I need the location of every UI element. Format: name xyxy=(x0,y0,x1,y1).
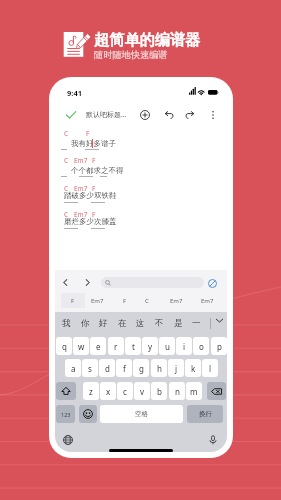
staticText: C xyxy=(64,129,69,138)
button[interactable]: x xyxy=(100,382,116,400)
staticText: 磨烂多少次膝盖 xyxy=(64,217,117,226)
button[interactable]: Redo xyxy=(180,105,200,125)
staticText: 123 xyxy=(61,411,71,418)
button[interactable]: c xyxy=(117,382,133,400)
button[interactable]: C xyxy=(135,293,159,308)
button[interactable]: u xyxy=(159,337,175,355)
staticText: c xyxy=(123,386,127,397)
button[interactable]: p xyxy=(211,337,227,355)
staticText: t xyxy=(132,341,135,352)
button[interactable]: 这 xyxy=(131,313,149,334)
staticText: m xyxy=(190,386,198,397)
button[interactable]: Next chord xyxy=(78,273,96,291)
staticText: Em7 xyxy=(170,297,183,305)
staticText: C xyxy=(64,156,69,165)
button[interactable]: Backspace xyxy=(207,382,226,400)
button[interactable]: h xyxy=(151,359,167,377)
staticText: Em7 xyxy=(74,184,88,193)
button[interactable]: Clear chord xyxy=(203,274,221,292)
staticText: 空格 xyxy=(135,410,148,418)
staticText: a xyxy=(71,363,76,374)
staticText: Em7 xyxy=(74,156,88,165)
button[interactable]: 我 xyxy=(57,313,75,334)
button[interactable]: Emoji xyxy=(79,405,97,423)
button[interactable]: F xyxy=(61,293,85,308)
button[interactable]: Previous chord xyxy=(56,273,74,291)
button[interactable]: 你 xyxy=(76,313,94,334)
button[interactable]: g xyxy=(133,359,149,377)
button[interactable]: 换行 xyxy=(187,405,223,423)
staticText: C xyxy=(145,297,149,305)
button[interactable]: q xyxy=(56,337,72,355)
staticText: 好 xyxy=(99,318,108,329)
staticText: q xyxy=(62,341,67,352)
staticText: e xyxy=(96,341,101,352)
staticText: 一 xyxy=(192,318,201,329)
staticText: o xyxy=(199,341,204,352)
button[interactable]: 一 xyxy=(187,313,205,334)
staticText: z xyxy=(89,386,93,397)
button[interactable]: l xyxy=(202,359,218,377)
button[interactable]: Undo xyxy=(159,105,179,125)
staticText: F xyxy=(71,297,75,305)
staticText: 我有好多谱子 xyxy=(71,139,116,148)
staticText: F xyxy=(92,210,96,219)
button[interactable] xyxy=(101,277,204,288)
button[interactable]: More candidates xyxy=(212,313,226,327)
staticText: v xyxy=(140,386,145,397)
staticText: 个个都求之不得 xyxy=(71,166,124,175)
staticText: 这 xyxy=(136,318,145,329)
button[interactable]: 是 xyxy=(169,313,187,334)
button[interactable]: o xyxy=(193,337,209,355)
staticText: 我 xyxy=(62,318,71,329)
button[interactable]: y xyxy=(142,337,158,355)
staticText: 你 xyxy=(81,318,90,329)
button[interactable]: Em7 xyxy=(195,293,219,308)
button[interactable]: Save xyxy=(61,105,81,125)
button[interactable]: e xyxy=(90,337,106,355)
button[interactable]: More options xyxy=(203,105,223,125)
button[interactable]: s xyxy=(82,359,98,377)
button[interactable]: w xyxy=(73,337,89,355)
staticText: j xyxy=(175,363,178,374)
button[interactable]: 空格 xyxy=(100,405,183,423)
staticText: s xyxy=(88,363,92,374)
button[interactable]: v xyxy=(134,382,150,400)
staticText: 在 xyxy=(118,318,127,329)
staticText: f xyxy=(123,363,126,374)
button[interactable]: 在 xyxy=(113,313,131,334)
button[interactable]: z xyxy=(83,382,99,400)
button[interactable]: 不 xyxy=(150,313,168,334)
button[interactable]: j xyxy=(168,359,184,377)
staticText: p xyxy=(217,341,222,352)
staticText: 踏破多少双铁鞋 xyxy=(64,191,117,200)
staticText: h xyxy=(157,363,162,374)
button[interactable]: Em7 xyxy=(164,293,188,308)
staticText: 9:41 xyxy=(67,88,82,98)
button[interactable]: m xyxy=(186,382,202,400)
button[interactable]: t xyxy=(125,337,141,355)
button[interactable]: i xyxy=(176,337,192,355)
button[interactable]: n xyxy=(169,382,185,400)
staticText: r xyxy=(114,341,118,352)
button[interactable]: 123 xyxy=(56,405,75,423)
button[interactable]: d xyxy=(99,359,115,377)
button[interactable]: a xyxy=(65,359,81,377)
button[interactable]: Switch language xyxy=(59,431,77,449)
button[interactable]: k xyxy=(185,359,201,377)
staticText: k xyxy=(191,363,196,374)
button[interactable]: 好 xyxy=(94,313,112,334)
button[interactable]: Add section xyxy=(135,105,155,125)
button[interactable]: F xyxy=(113,293,137,308)
staticText: C xyxy=(64,184,69,193)
button[interactable]: 默认吧标题… xyxy=(86,110,127,120)
button[interactable]: Dictation xyxy=(204,431,222,449)
button[interactable]: Em7 xyxy=(85,293,109,308)
staticText: x xyxy=(106,386,111,397)
staticText: 是 xyxy=(174,318,183,329)
button[interactable]: r xyxy=(108,337,124,355)
button[interactable]: f xyxy=(116,359,132,377)
button[interactable]: Shift xyxy=(56,382,76,400)
button[interactable]: b xyxy=(151,382,167,400)
staticText: 默认吧标题… xyxy=(86,110,127,120)
